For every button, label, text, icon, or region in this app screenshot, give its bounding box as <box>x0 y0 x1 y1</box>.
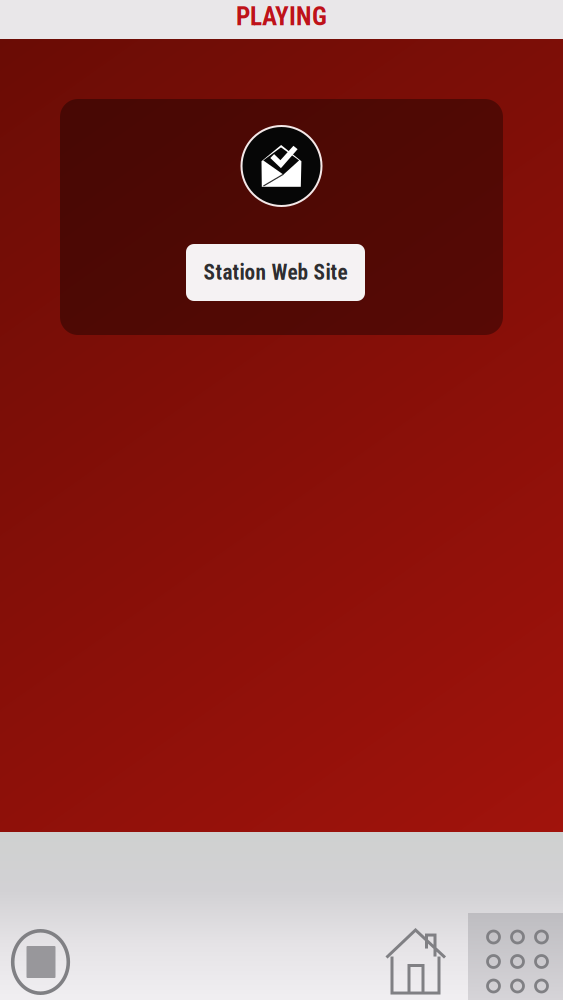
button[interactable]: Keypad <box>468 913 563 1000</box>
staticText: Station Web Site <box>203 260 347 285</box>
button[interactable]: Station Web Site <box>186 244 365 301</box>
staticText: PLAYING <box>236 2 327 31</box>
button[interactable]: Stop <box>11 928 71 995</box>
button[interactable]: Home <box>385 928 446 994</box>
